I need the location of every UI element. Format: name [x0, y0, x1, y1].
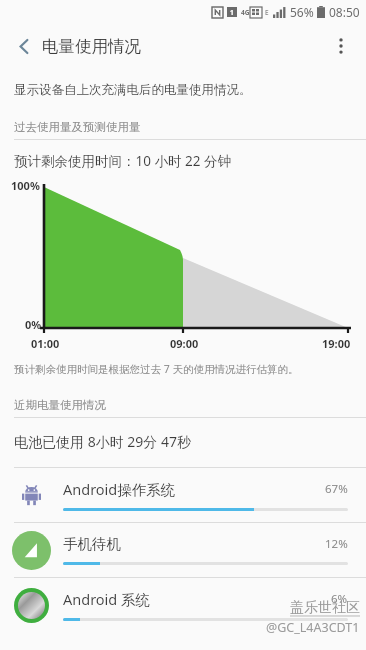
staticText: 1 — [230, 8, 234, 17]
staticText: 4G — [241, 8, 250, 17]
staticText: 盖乐世社区 — [290, 599, 360, 617]
staticText: Android操作系统 — [63, 479, 325, 499]
staticText: 01:00 — [31, 336, 60, 351]
button[interactable]: Android操作系统 — [0, 468, 366, 522]
staticText: 电量使用情况 — [42, 36, 141, 57]
staticText: 过去使用量及预测使用量 — [14, 120, 141, 134]
staticText: 12% — [325, 536, 348, 552]
staticText: 08:50 — [329, 4, 360, 20]
staticText: 显示设备自上次充满电后的电量使用情况。 — [14, 82, 252, 98]
button[interactable]: More options — [322, 27, 360, 65]
staticText: 67% — [325, 481, 348, 497]
staticText: 6% — [331, 591, 348, 607]
staticText: 100% — [11, 178, 40, 193]
staticText: Android 系统 — [63, 589, 331, 609]
staticText: 手机待机 — [63, 535, 325, 553]
staticText: 预计剩余使用时间：10 小时 22 分钟 — [14, 152, 231, 170]
staticText: @GC_L4A3CDT1 — [266, 619, 360, 636]
button[interactable]: 手机待机 — [0, 523, 366, 577]
staticText: 0% — [25, 317, 42, 332]
staticText: 预计剩余使用时间是根据您过去 7 天的使用情况进行估算的。 — [14, 362, 299, 376]
staticText: 56% — [290, 4, 314, 20]
staticText: 19:00 — [322, 336, 351, 351]
staticText: E — [265, 8, 269, 17]
staticText: 近期电量使用情况 — [14, 398, 106, 412]
button[interactable]: Back — [6, 28, 42, 64]
button[interactable]: Android 系统 — [0, 578, 366, 632]
staticText: 电池已使用 8小时 29分 47秒 — [14, 432, 191, 451]
staticText: 09:00 — [170, 336, 199, 351]
